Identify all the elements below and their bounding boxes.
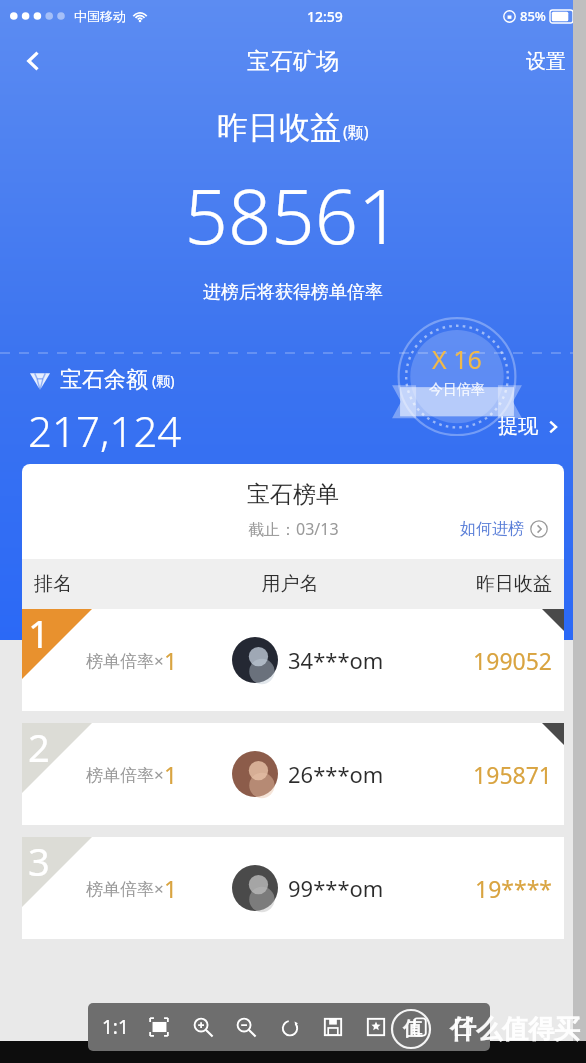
- staticText: 昨日收益: [217, 108, 341, 147]
- staticText: 58561: [0, 163, 586, 267]
- staticText: (颗): [152, 371, 175, 390]
- button[interactable]: 1: [22, 609, 564, 711]
- button[interactable]: 1:1: [98, 1010, 133, 1044]
- staticText: 昨日收益: [434, 572, 552, 596]
- button[interactable]: Save: [316, 1010, 350, 1044]
- button[interactable]: 如何进榜: [456, 515, 552, 543]
- other: 今日倍率 X16: [384, 308, 530, 454]
- staticText: 195871: [432, 759, 552, 790]
- staticText: 榜单倍率×: [86, 877, 164, 900]
- staticText: (颗): [343, 121, 369, 143]
- staticText: 1: [164, 759, 178, 790]
- staticText: 26***om: [288, 759, 384, 789]
- staticText: 3: [28, 835, 50, 887]
- staticText: 榜单倍率×: [86, 649, 164, 672]
- staticText: 1: [164, 873, 178, 904]
- staticText: 值: [403, 1017, 422, 1041]
- button[interactable]: 设置: [520, 41, 572, 82]
- staticText: 19****: [432, 873, 552, 904]
- staticText: 如何进榜: [460, 519, 524, 539]
- staticText: 截止：03/13: [248, 518, 339, 540]
- staticText: 217,124: [28, 402, 182, 459]
- button[interactable]: 提现: [492, 408, 566, 445]
- staticText: 榜单倍率×: [86, 763, 164, 786]
- staticText: 今日倍率: [384, 381, 530, 399]
- button[interactable]: Back: [6, 33, 62, 89]
- staticText: 宝石榜单: [22, 480, 564, 509]
- staticText: 199052: [432, 645, 552, 676]
- staticText: 什么值得买: [450, 1013, 580, 1046]
- staticText: 宝石矿场: [247, 47, 339, 76]
- staticText: 1: [164, 645, 178, 676]
- button[interactable]: Rotate: [273, 1010, 307, 1044]
- staticText: 提现: [498, 414, 538, 439]
- staticText: 用户名: [146, 572, 434, 596]
- staticText: 85%: [520, 7, 546, 25]
- staticText: 34***om: [288, 645, 384, 675]
- staticText: 排名: [34, 572, 146, 596]
- button[interactable]: Bookmark: [359, 1010, 393, 1044]
- staticText: 进榜后将获得榜单倍率: [0, 281, 586, 304]
- staticText: 中国移动: [74, 8, 126, 24]
- button[interactable]: 2: [22, 723, 564, 825]
- staticText: 设置: [526, 49, 566, 74]
- button[interactable]: Fit to screen: [142, 1010, 176, 1044]
- button[interactable]: Share: [446, 1010, 480, 1044]
- staticText: 99***om: [288, 873, 384, 903]
- staticText: 12:59: [307, 7, 343, 26]
- staticText: X 16: [384, 342, 530, 376]
- button[interactable]: 3: [22, 837, 564, 939]
- button[interactable]: Zoom in: [186, 1010, 220, 1044]
- staticText: 2: [28, 721, 50, 773]
- button[interactable]: Device: [403, 1010, 437, 1044]
- staticText: 1: [28, 607, 50, 659]
- staticText: 宝石余额: [60, 366, 148, 394]
- button[interactable]: Zoom out: [229, 1010, 263, 1044]
